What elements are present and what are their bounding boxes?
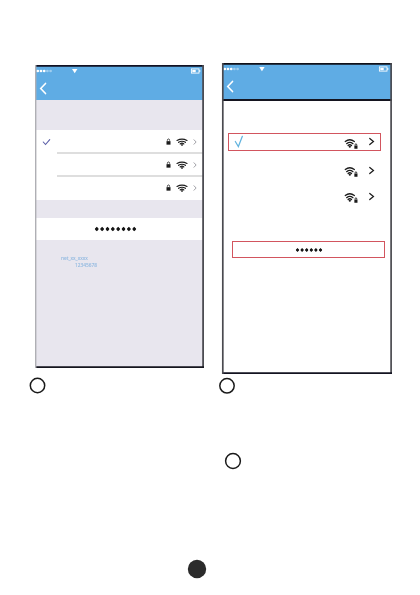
button[interactable]	[35, 153, 204, 176]
button[interactable]	[228, 188, 381, 205]
button[interactable]	[35, 218, 204, 240]
staticText: 12345678	[75, 262, 97, 269]
button[interactable]: Back	[36, 80, 50, 97]
staticText: net_xx_xxxx	[61, 255, 88, 262]
button[interactable]: Back	[223, 78, 237, 95]
button[interactable]	[232, 241, 385, 258]
button[interactable]	[35, 176, 204, 199]
button[interactable]	[228, 133, 381, 151]
button[interactable]	[228, 162, 381, 179]
other: Figure callouts	[0, 0, 420, 595]
button[interactable]	[35, 130, 204, 153]
